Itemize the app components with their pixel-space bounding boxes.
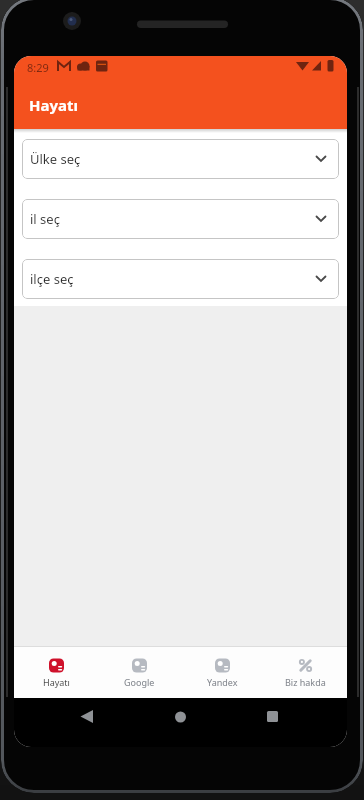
staticText: Ülke seç — [30, 150, 81, 168]
button[interactable]: Ülke seç — [22, 139, 339, 179]
staticText: il seç — [30, 210, 60, 228]
staticText: Biz hakda — [285, 676, 326, 688]
staticText: 8:29 — [27, 60, 49, 75]
staticText: Yandex — [207, 676, 238, 688]
staticText: ilçe seç — [30, 270, 74, 288]
button[interactable]: Hayatı — [14, 646, 98, 698]
button[interactable]: ilçe seç — [22, 259, 339, 299]
staticText: Hayatı — [43, 676, 70, 688]
staticText: Google — [124, 676, 155, 688]
button[interactable]: Google — [98, 646, 181, 698]
button[interactable]: Yandex — [181, 646, 264, 698]
button[interactable]: il seç — [22, 199, 339, 239]
staticText: Hayatı — [29, 95, 79, 115]
button[interactable]: Biz hakda — [264, 646, 347, 698]
